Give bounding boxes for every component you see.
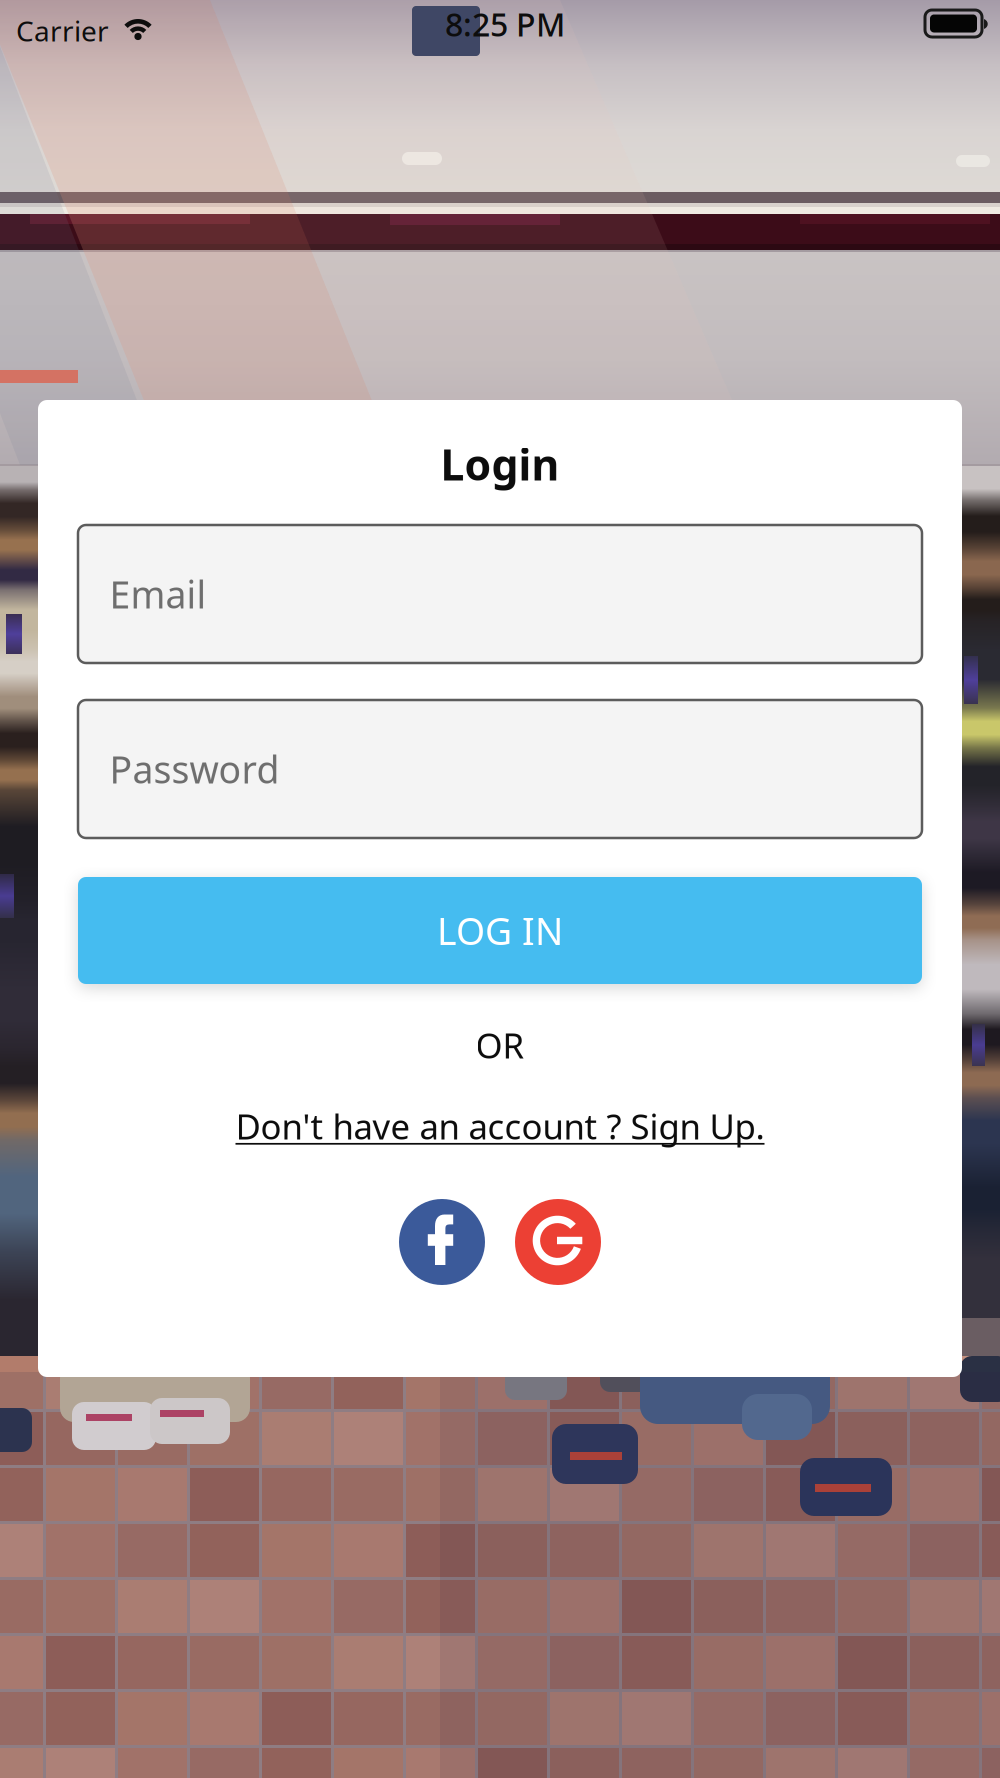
- button[interactable]: Sign in with Google: [515, 1199, 601, 1285]
- staticText: 8:25 PM: [445, 3, 565, 45]
- staticText: Email: [109, 569, 206, 619]
- button[interactable]: Don't have an account ? Sign Up.: [38, 1104, 962, 1148]
- staticText: OR: [475, 1022, 524, 1068]
- staticText: LOG IN: [437, 906, 563, 955]
- staticText: Password: [109, 744, 279, 794]
- button[interactable]: LOG IN: [78, 877, 922, 984]
- staticText: Login: [440, 436, 559, 492]
- button[interactable]: Sign in with Facebook: [399, 1199, 485, 1285]
- staticText: Don't have an account ? Sign Up.: [235, 1103, 764, 1149]
- staticText: Carrier: [16, 12, 109, 49]
